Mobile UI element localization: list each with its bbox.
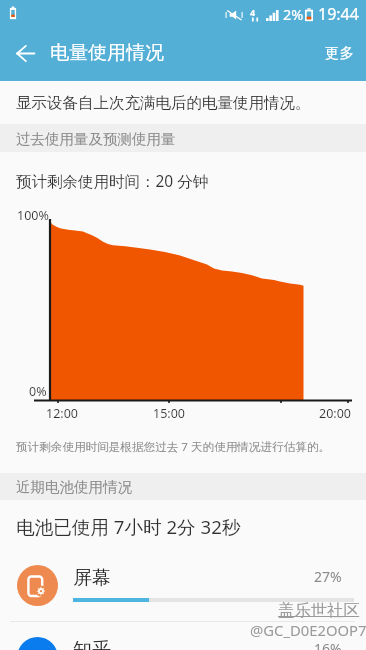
staticText: 19:44 [318,3,359,25]
button[interactable]: 知乎 [0,622,366,650]
staticText: 2% [283,4,304,24]
staticText: 近期电池使用情况 [16,478,132,496]
staticText: 屏幕 [73,566,111,590]
staticText: 显示设备自上次充满电后的电量使用情况。 [16,93,311,113]
button[interactable]: Back [3,31,47,75]
staticText: 15:00 [153,405,185,422]
staticText: 20:00 [319,405,351,422]
staticText: 100% [17,207,49,224]
staticText: 4G [250,6,260,21]
button[interactable]: 屏幕 [0,550,366,619]
staticText: 电池已使用 7小时 2分 32秒 [16,514,241,539]
staticText: 0% [29,383,47,400]
button[interactable]: 更多 [315,35,364,71]
staticText: 电量使用情况 [50,41,164,65]
staticText: 16% [314,639,342,650]
staticText: 过去使用量及预测使用量 [16,130,176,148]
staticText: 12:00 [46,405,78,422]
staticText: 27% [314,567,342,586]
staticText: 更多 [325,44,354,62]
staticText: 盖乐世社区 [278,600,360,621]
staticText: 预计剩余使用时间：20 分钟 [16,170,209,191]
staticText: 知乎 [73,638,111,650]
staticText: 预计剩余使用时间是根据您过去 7 天的使用情况进行估算的。 [16,439,331,455]
staticText: @GC_D0E2OOP7 [250,620,366,640]
